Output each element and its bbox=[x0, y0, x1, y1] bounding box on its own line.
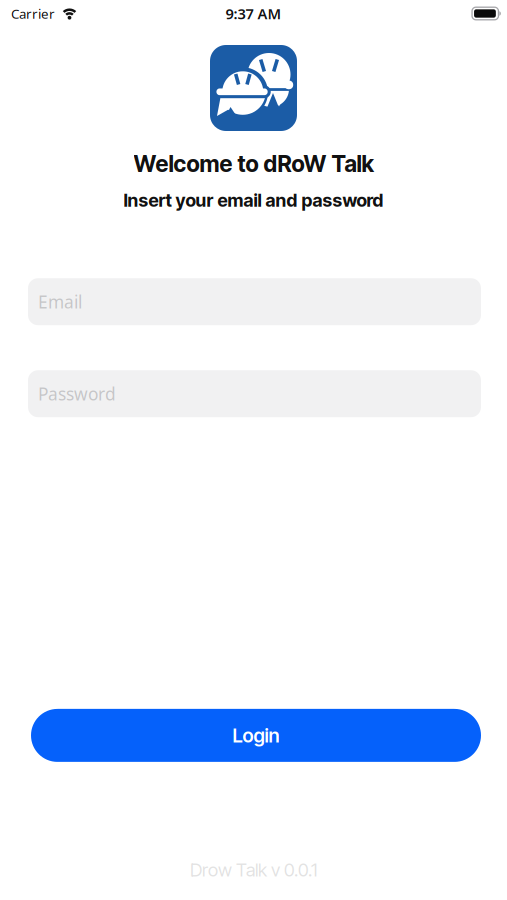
button[interactable]: Login bbox=[31, 709, 481, 762]
staticText: Password bbox=[38, 382, 116, 405]
staticText: Email bbox=[38, 290, 82, 313]
button[interactable]: Email bbox=[28, 278, 481, 325]
staticText: Insert your email and password bbox=[123, 189, 383, 211]
staticText: Welcome to dRoW Talk bbox=[133, 150, 373, 177]
staticText: 9:37 AM bbox=[225, 4, 281, 23]
button[interactable]: Password bbox=[28, 370, 481, 417]
staticText: Drow Talk v 0.0.1 bbox=[190, 859, 317, 881]
staticText: Carrier bbox=[11, 5, 55, 22]
staticText: Login bbox=[232, 724, 279, 747]
